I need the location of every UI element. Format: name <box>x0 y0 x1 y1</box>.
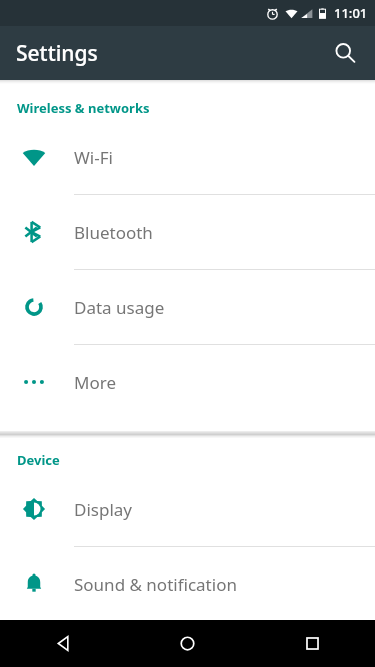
staticText: Wi-Fi <box>74 146 113 169</box>
button[interactable]: Wi-Fi <box>0 120 375 195</box>
button[interactable]: Back <box>0 620 125 667</box>
staticText: Device <box>17 451 60 469</box>
staticText: Settings <box>16 39 98 68</box>
button[interactable]: Recents <box>250 620 375 667</box>
staticText: Sound & notification <box>74 573 237 596</box>
button[interactable]: More <box>0 345 375 419</box>
staticText: Wireless & networks <box>17 99 150 117</box>
staticText: Data usage <box>74 296 165 319</box>
staticText: 11:01 <box>334 4 368 22</box>
button[interactable]: Data usage <box>0 270 375 345</box>
button[interactable]: Home <box>125 620 250 667</box>
staticText: Bluetooth <box>74 221 153 244</box>
button[interactable]: Sound & notification <box>0 547 375 621</box>
button[interactable]: Search <box>323 31 367 75</box>
button[interactable]: Display <box>0 472 375 547</box>
button[interactable]: Bluetooth <box>0 195 375 270</box>
staticText: Display <box>74 498 132 521</box>
staticText: More <box>74 371 116 394</box>
